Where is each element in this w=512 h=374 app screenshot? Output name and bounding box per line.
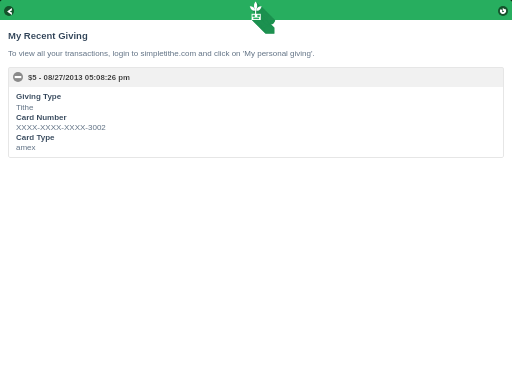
staticText: To view all your transactions, login to … [8,49,315,58]
staticText: Card Number [16,113,67,122]
staticText: Tithe [16,103,34,112]
button[interactable]: $5 - 08/27/2013 05:08:26 pm [8,67,504,87]
staticText: $5 - 08/27/2013 05:08:26 pm [28,73,130,82]
staticText: My Recent Giving [8,30,88,41]
staticText: Card Type [16,133,55,142]
staticText: amex [16,143,36,152]
staticText: XXXX-XXXX-XXXX-3002 [16,123,106,132]
button[interactable]: Refresh [498,6,508,16]
button[interactable]: Back [4,6,14,16]
staticText: Giving Type [16,92,62,101]
